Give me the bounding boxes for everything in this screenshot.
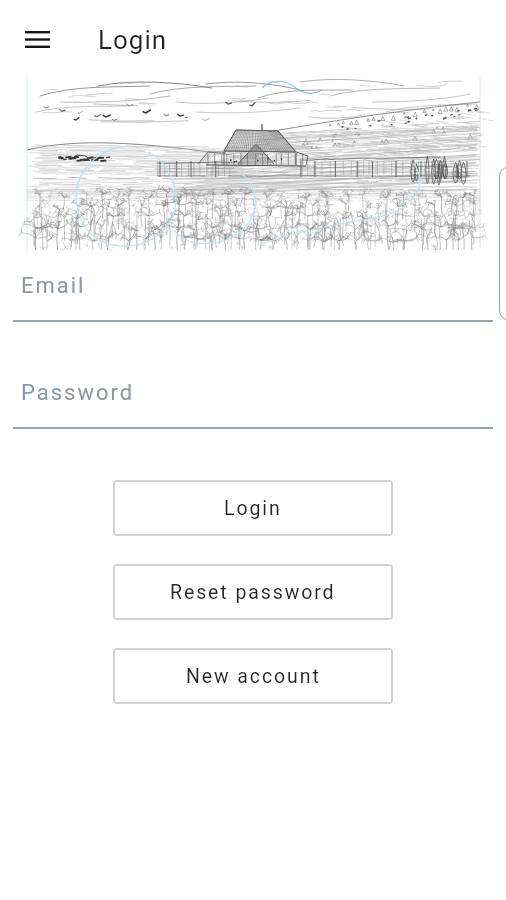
- button[interactable]: Open navigation menu: [12, 17, 62, 62]
- staticText: Password: [21, 380, 135, 406]
- button[interactable]: Login: [113, 480, 393, 536]
- button[interactable]: Password: [13, 372, 493, 429]
- button[interactable]: New account: [113, 648, 393, 704]
- staticText: Login: [98, 25, 168, 55]
- button[interactable]: Reset password: [113, 564, 393, 620]
- staticText: Login: [224, 497, 282, 520]
- staticText: New account: [186, 665, 321, 688]
- button[interactable]: Email: [13, 265, 493, 322]
- staticText: Reset password: [170, 581, 336, 604]
- staticText: Email: [21, 273, 86, 299]
